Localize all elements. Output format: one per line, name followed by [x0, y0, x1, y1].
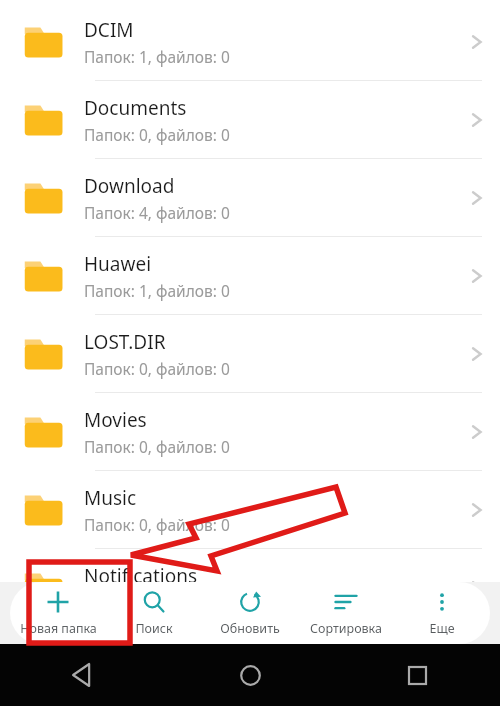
- staticText: Еще: [429, 620, 455, 637]
- staticText: Music: [84, 485, 137, 511]
- staticText: Папок: 0, файлов: 0: [84, 358, 230, 379]
- staticText: Поиск: [135, 620, 173, 637]
- button[interactable]: Сортировка: [298, 582, 394, 644]
- staticText: Huawei: [84, 251, 152, 277]
- button[interactable]: Movies: [0, 393, 500, 471]
- button[interactable]: Home: [226, 651, 274, 699]
- staticText: DCIM: [84, 17, 134, 43]
- staticText: Новая папка: [20, 620, 97, 637]
- staticText: Папок: 4, файлов: 0: [84, 202, 230, 223]
- button[interactable]: Huawei: [0, 237, 500, 315]
- staticText: LOST.DIR: [84, 329, 166, 355]
- staticText: Download: [84, 173, 175, 199]
- button[interactable]: Новая папка: [10, 582, 106, 644]
- staticText: Notifications: [84, 563, 198, 589]
- button[interactable]: DCIM: [0, 3, 500, 81]
- button[interactable]: Notifications: [0, 549, 500, 627]
- button[interactable]: Documents: [0, 81, 500, 159]
- staticText: Папок: 0, файлов: 0: [84, 592, 230, 613]
- staticText: Папок: 0, файлов: 0: [84, 436, 230, 457]
- staticText: Папок: 0, файлов: 0: [84, 124, 230, 145]
- staticText: Movies: [84, 407, 147, 433]
- button[interactable]: Back: [59, 651, 107, 699]
- button[interactable]: LOST.DIR: [0, 315, 500, 393]
- staticText: Documents: [84, 95, 187, 121]
- button[interactable]: Обновить: [202, 582, 298, 644]
- button[interactable]: Еще: [394, 582, 490, 644]
- staticText: Папок: 1, файлов: 0: [84, 280, 230, 301]
- button[interactable]: Music: [0, 471, 500, 549]
- staticText: Сортировка: [310, 620, 382, 637]
- staticText: Папок: 0, файлов: 0: [84, 514, 230, 535]
- button[interactable]: Поиск: [106, 582, 202, 644]
- button[interactable]: Download: [0, 159, 500, 237]
- staticText: Папок: 1, файлов: 0: [84, 46, 230, 67]
- staticText: Обновить: [220, 620, 280, 637]
- button[interactable]: Recents: [393, 651, 441, 699]
